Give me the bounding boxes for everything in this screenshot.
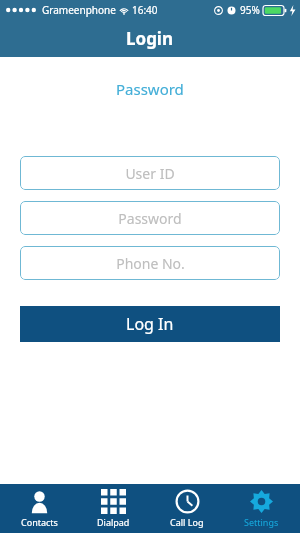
- button[interactable]: Dialpad: [78, 484, 148, 533]
- staticText: 95%: [240, 3, 260, 17]
- staticText: Call Log: [170, 516, 204, 528]
- staticText: Log In: [126, 313, 174, 335]
- staticText: Contacts: [21, 516, 58, 528]
- staticText: User ID: [125, 164, 175, 183]
- button[interactable]: Log In: [20, 306, 280, 342]
- staticText: Login: [126, 27, 174, 50]
- button[interactable]: Password: [106, 75, 194, 103]
- staticText: Password: [118, 209, 182, 228]
- staticText: Dialpad: [97, 516, 130, 528]
- staticText: Password: [116, 79, 184, 99]
- staticText: Phone No.: [116, 254, 185, 273]
- button[interactable]: User ID: [20, 156, 280, 190]
- button[interactable]: Settings: [226, 484, 296, 533]
- button[interactable]: Password: [20, 201, 280, 235]
- button[interactable]: Contacts: [4, 484, 74, 533]
- staticText: Settings: [244, 516, 279, 528]
- staticText: Grameenphone: [42, 3, 116, 17]
- button[interactable]: Phone No.: [20, 246, 280, 280]
- staticText: 16:40: [132, 3, 158, 17]
- button[interactable]: Call Log: [152, 484, 222, 533]
